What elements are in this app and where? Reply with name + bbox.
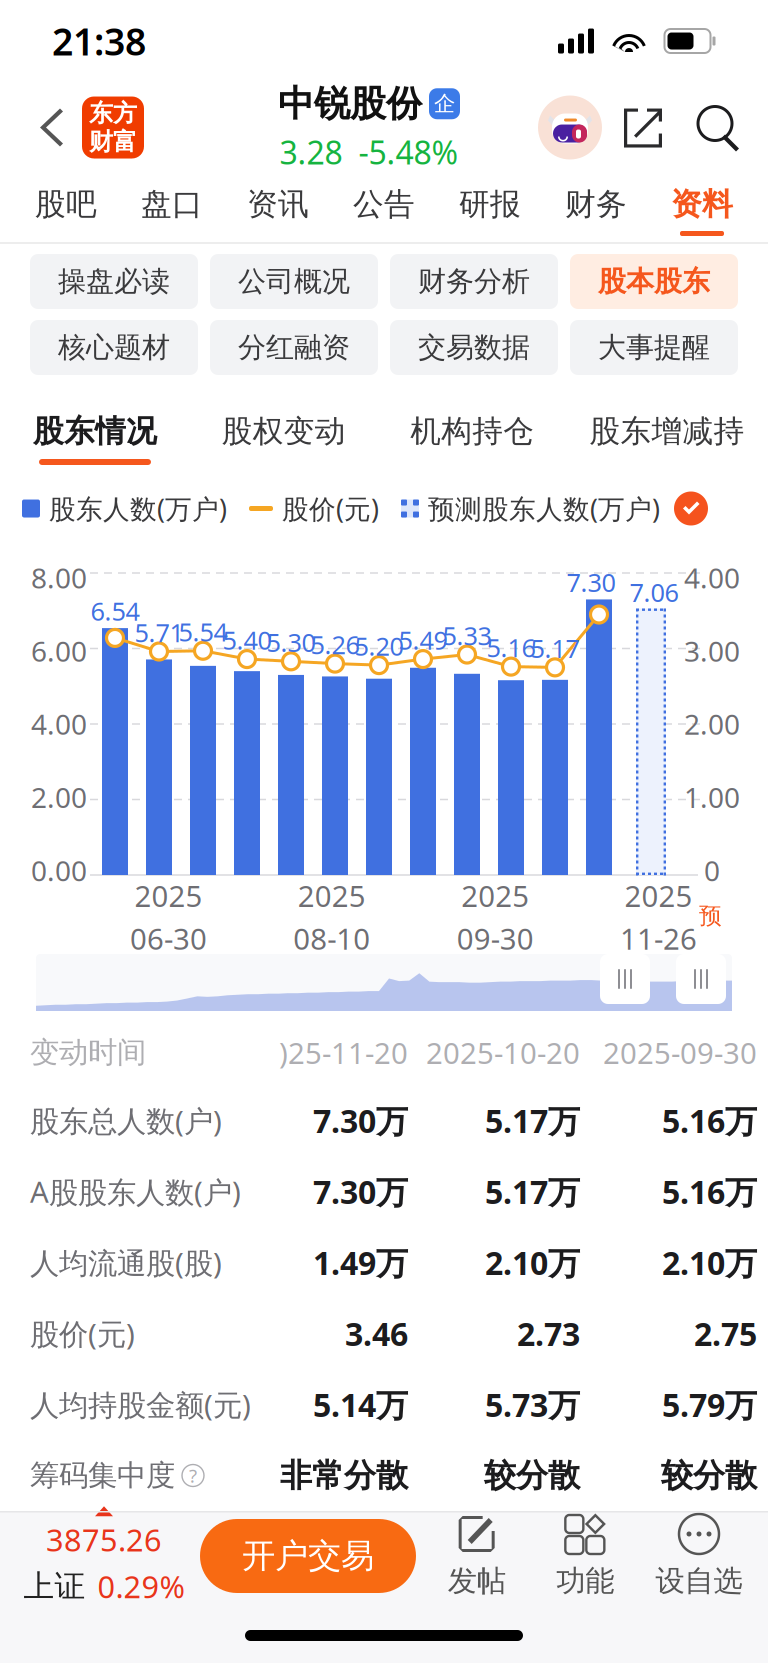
button[interactable]: 研报 [437, 173, 543, 242]
staticText: 股东增减持 [589, 412, 744, 450]
staticText: 2025 [134, 876, 202, 915]
staticText: 功能 [556, 1563, 614, 1599]
staticText: 变动时间 [30, 1034, 146, 1070]
staticText: 5.71 [134, 615, 183, 649]
button[interactable]: Back [26, 90, 76, 164]
staticText: 6.00 [31, 632, 87, 669]
staticText: 企 [434, 91, 455, 117]
staticText: 08-10 [293, 919, 370, 958]
staticText: 7.30万 [313, 1099, 408, 1142]
staticText: 1.49万 [313, 1241, 408, 1284]
staticText: 资料 [671, 185, 733, 223]
staticText: 大事提醒 [598, 330, 710, 365]
staticText: 操盘必读 [58, 264, 170, 299]
button[interactable]: Search [694, 103, 742, 151]
staticText: 人均流通股(股) [30, 1243, 222, 1282]
staticText: 0.00 [31, 852, 87, 889]
staticText: 11-26 [620, 919, 697, 958]
staticText: 股价(元) [282, 491, 379, 526]
staticText: 2.10万 [485, 1241, 580, 1284]
staticText: 人均持股金额(元) [30, 1385, 251, 1424]
staticText: 股吧 [35, 185, 97, 223]
staticText: 非常分散 [280, 1456, 408, 1495]
staticText: 5.40 [222, 623, 271, 657]
staticText: 财务 [565, 185, 627, 223]
staticText: 5.30 [266, 625, 315, 659]
staticText: 8.00 [31, 559, 87, 596]
staticText: 3875.26 [46, 1519, 162, 1560]
staticText: 2025 [298, 876, 366, 915]
staticText: 4.00 [31, 705, 87, 743]
staticText: 5.26 [310, 628, 359, 661]
staticText: A股股东人数(户) [30, 1172, 241, 1211]
staticText: 5.17万 [485, 1170, 580, 1213]
button[interactable]: 分红融资 [210, 320, 378, 375]
staticText: 2025-10-20 [426, 1033, 580, 1072]
staticText: 5.20 [354, 629, 403, 663]
button[interactable]: 股吧 [13, 173, 119, 242]
button[interactable]: 财务 [543, 173, 649, 242]
button[interactable]: 股东增减持 [586, 386, 748, 471]
button[interactable]: 核心题材 [30, 320, 198, 375]
button[interactable]: Range end [676, 954, 726, 1004]
staticText: 股价(元) [30, 1314, 135, 1353]
staticText: 4.00 [684, 559, 740, 596]
staticText: 股本股东 [598, 264, 710, 299]
staticText: 5.33 [442, 618, 491, 652]
button[interactable]: 公告 [331, 173, 437, 242]
button[interactable]: AI assistant [538, 95, 602, 159]
button[interactable]: 大事提醒 [570, 320, 738, 375]
staticText: ? [189, 1463, 197, 1488]
staticText: 较分散 [661, 1456, 757, 1495]
button[interactable]: 交易数据 [390, 320, 558, 375]
button[interactable]: 操盘必读 [30, 254, 198, 309]
staticText: 3.28 [279, 131, 342, 173]
button[interactable]: East Money home [82, 96, 144, 158]
button[interactable]: 发帖 [429, 1513, 525, 1599]
staticText: 核心题材 [58, 330, 170, 365]
staticText: 09-30 [457, 919, 534, 958]
button[interactable]: 开户交易 [200, 1519, 416, 1593]
button[interactable]: 公司概况 [210, 254, 378, 309]
staticText: 筹码集中度 [30, 1457, 175, 1493]
staticText: 7.30万 [313, 1170, 408, 1213]
button[interactable]: 财务分析 [390, 254, 558, 309]
button[interactable]: Share [620, 103, 668, 151]
button[interactable]: 股本股东 [570, 254, 738, 309]
button[interactable]: Toggle forecast series [674, 491, 708, 525]
staticText: 研报 [459, 185, 521, 223]
staticText: 5.79万 [662, 1383, 757, 1426]
staticText: 6.54 [90, 594, 139, 628]
staticText: 交易数据 [418, 330, 530, 365]
staticText: 设自选 [655, 1563, 742, 1599]
staticText: 财务分析 [418, 264, 530, 299]
staticText: 0 [704, 852, 720, 889]
staticText: 3.46 [345, 1312, 408, 1355]
staticText: 0.29% [97, 1566, 184, 1607]
staticText: 盘口 [141, 185, 203, 223]
button[interactable]: 功能 [537, 1513, 633, 1599]
button[interactable]: 盘口 [119, 173, 225, 242]
staticText: 公司概况 [238, 264, 350, 299]
staticText: 分红融资 [238, 330, 350, 365]
staticText: 5.17万 [485, 1099, 580, 1142]
staticText: 2.00 [31, 779, 87, 816]
staticText: 较分散 [484, 1456, 580, 1495]
staticText: 5.16 [486, 631, 535, 664]
button[interactable]: 资料 [649, 173, 755, 242]
button[interactable]: 设自选 [646, 1513, 752, 1599]
button[interactable]: 股权变动 [209, 386, 359, 471]
staticText: 2.75 [694, 1312, 757, 1355]
staticText: 5.73万 [485, 1383, 580, 1426]
staticText: 2.73 [517, 1312, 580, 1355]
staticText: 3.00 [684, 632, 740, 669]
staticText: 财富 [89, 127, 137, 156]
button[interactable]: 股东情况 [20, 386, 170, 471]
staticText: 2025 [624, 876, 692, 915]
button[interactable]: 机构持仓 [397, 386, 547, 471]
staticText: 7.06 [629, 575, 678, 609]
staticText: 5.16万 [662, 1170, 757, 1213]
staticText: 中锐股份 [278, 82, 422, 126]
button[interactable]: 资讯 [225, 173, 331, 242]
button[interactable]: Range start [600, 954, 650, 1004]
